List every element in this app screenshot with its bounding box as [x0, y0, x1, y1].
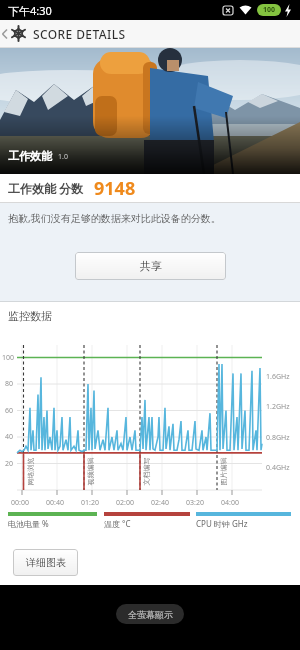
- staticText: 0.4GHz: [266, 463, 290, 473]
- staticText: 视频编辑: [85, 457, 94, 485]
- staticText: 00:00: [11, 498, 29, 508]
- staticText: 20: [5, 459, 14, 469]
- staticText: 抱歉,我们没有足够的数据来对比此设备的分数。: [8, 211, 221, 225]
- staticText: 03:20: [186, 498, 204, 508]
- button[interactable]: 详细图表: [13, 549, 78, 576]
- staticText: 0.8GHz: [266, 433, 290, 443]
- staticText: 100: [2, 353, 15, 363]
- staticText: 40: [5, 432, 14, 442]
- staticText: 图片编辑: [218, 457, 227, 485]
- staticText: 工作效能 分数: [8, 180, 84, 196]
- staticText: 文档编写: [141, 457, 150, 485]
- staticText: 详细图表: [26, 556, 66, 569]
- staticText: 100: [263, 5, 276, 15]
- staticText: 共享: [140, 259, 162, 273]
- staticText: 02:00: [116, 498, 134, 508]
- staticText: 下午4:30: [8, 3, 52, 18]
- staticText: 00:40: [46, 498, 64, 508]
- staticText: SCORE DETAILS: [33, 26, 126, 42]
- staticText: CPU 时钟 GHz: [196, 518, 248, 529]
- button[interactable]: 共享: [75, 252, 226, 280]
- staticText: 02:40: [151, 498, 169, 508]
- staticText: 1.6GHz: [266, 372, 290, 382]
- staticText: 工作效能: [8, 149, 52, 163]
- staticText: 60: [5, 406, 14, 416]
- staticText: 电池电量 %: [8, 518, 49, 529]
- staticText: 04:00: [221, 498, 239, 508]
- staticText: 80: [5, 379, 14, 389]
- button[interactable]: SCORE DETAILS: [0, 20, 300, 47]
- staticText: 全萤幕顯示: [128, 609, 173, 620]
- staticText: 温度 °C: [104, 518, 131, 529]
- staticText: 01:20: [81, 498, 99, 508]
- staticText: 1.0: [58, 152, 68, 162]
- staticText: 监控数据: [8, 309, 52, 323]
- staticText: 9148: [94, 176, 136, 201]
- staticText: 1.2GHz: [266, 402, 290, 412]
- button[interactable]: 全萤幕顯示: [116, 604, 184, 624]
- staticText: 网络浏览: [25, 457, 34, 485]
